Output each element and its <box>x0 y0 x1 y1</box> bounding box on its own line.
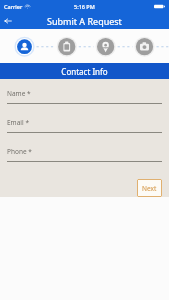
button[interactable]: Phone * <box>7 147 162 162</box>
button[interactable]: Name * <box>7 89 162 104</box>
button[interactable]: Back <box>0 13 16 29</box>
staticText: Next <box>142 184 157 193</box>
staticText: Phone * <box>7 147 32 156</box>
staticText: Submit A Request <box>47 15 122 27</box>
button[interactable]: Next <box>137 179 162 197</box>
button[interactable]: Email * <box>7 118 162 133</box>
button[interactable]: Contact Info step <box>0 29 43 63</box>
staticText: Contact Info <box>61 66 108 77</box>
staticText: Carrier <box>4 3 23 10</box>
button[interactable]: Location step <box>85 29 127 63</box>
staticText: Email * <box>7 118 29 127</box>
staticText: 5:16 PM <box>74 3 95 10</box>
button[interactable]: Photo step <box>127 29 169 63</box>
button[interactable]: Details step <box>43 29 85 63</box>
staticText: Name * <box>7 89 31 98</box>
